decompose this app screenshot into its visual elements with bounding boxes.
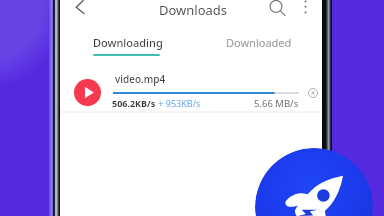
button[interactable]: Back	[68, 0, 92, 24]
button[interactable]: Search	[264, 0, 288, 24]
button[interactable]: Boost download	[255, 148, 373, 216]
button[interactable]	[196, 26, 322, 58]
staticText: Downloading	[93, 35, 163, 50]
button[interactable]: Cancel download	[305, 85, 320, 100]
staticText: 5.66 MB/s	[254, 97, 299, 110]
staticText: 506.2KB/s	[112, 97, 156, 109]
button[interactable]: More options	[298, 0, 314, 16]
staticText: Downloaded	[226, 35, 292, 50]
staticText: video.mp4	[115, 72, 166, 86]
staticText: + 953KB/s	[156, 97, 201, 109]
button[interactable]	[62, 26, 190, 58]
button[interactable]	[60, 66, 322, 112]
staticText: Downloads	[159, 1, 228, 19]
